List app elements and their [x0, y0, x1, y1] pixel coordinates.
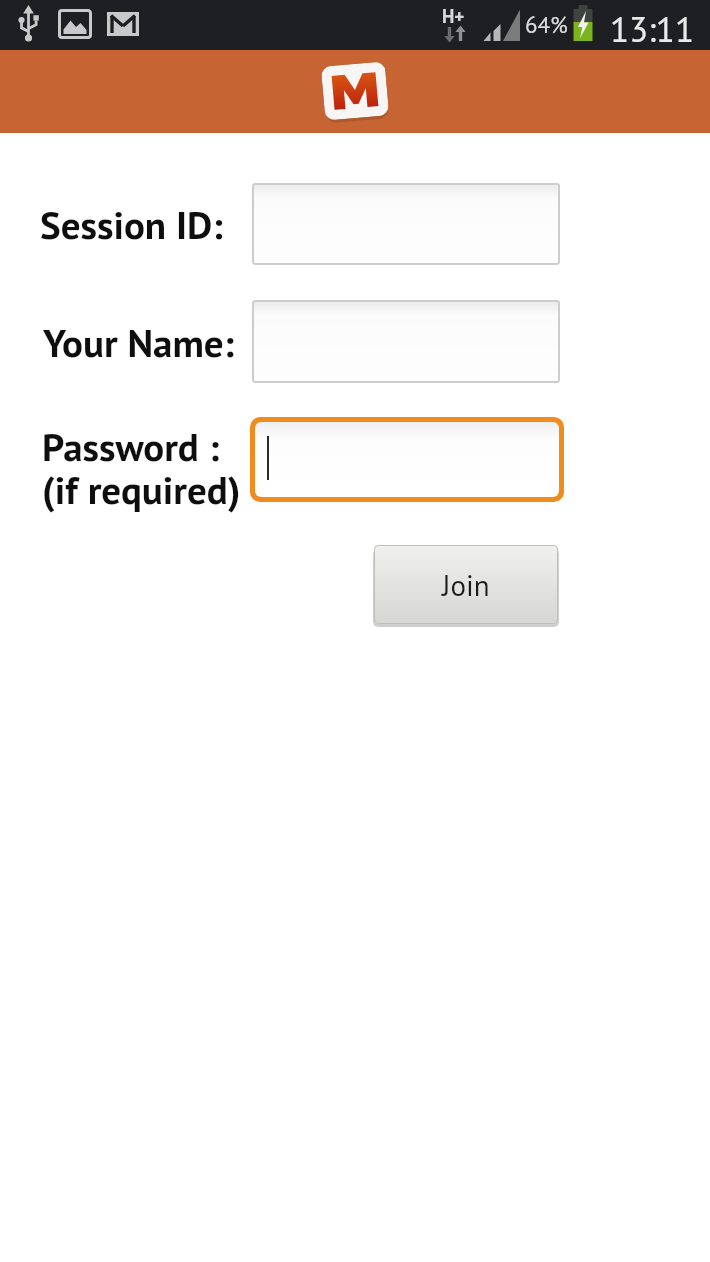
button[interactable] — [250, 417, 564, 502]
staticText: Password : (if required) — [42, 421, 241, 515]
staticText: Your Name: — [43, 317, 235, 367]
staticText: Session ID: — [40, 199, 223, 249]
staticText: 13:11 — [610, 6, 694, 42]
button[interactable] — [252, 183, 560, 265]
staticText: 64% — [525, 10, 568, 34]
button[interactable] — [321, 61, 389, 121]
button[interactable]: Join — [374, 545, 558, 624]
button[interactable] — [252, 300, 560, 383]
staticText: Join — [442, 566, 490, 604]
staticText: H+ — [442, 4, 465, 26]
